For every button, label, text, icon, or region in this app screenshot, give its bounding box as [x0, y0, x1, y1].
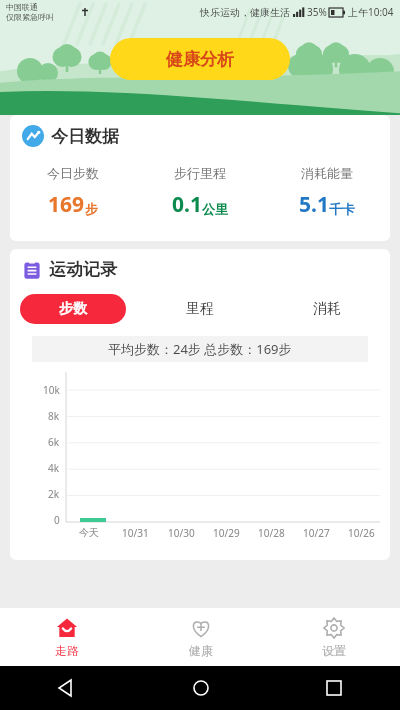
button[interactable]: 步行里程	[136, 165, 263, 219]
staticText: 运动记录	[49, 259, 117, 280]
staticText: 今日数据	[51, 126, 119, 147]
staticText: 169	[48, 190, 85, 219]
staticText: 消耗能量	[301, 165, 353, 181]
staticText: 10/31	[122, 526, 149, 540]
staticText: 今天	[79, 526, 99, 539]
staticText: 走路	[55, 643, 79, 658]
staticText: 仅限紧急呼叫	[6, 12, 54, 22]
staticText: 今日步数	[47, 165, 99, 181]
button[interactable]: 健康分析	[110, 38, 290, 80]
staticText: 消耗	[313, 300, 341, 318]
button[interactable]: 健康	[134, 608, 267, 666]
button[interactable]: 步数	[20, 294, 126, 324]
staticText: 5.1	[299, 190, 329, 219]
staticText: 步数	[59, 300, 87, 318]
staticText: 10/29	[213, 526, 240, 540]
staticText: 中国联通	[6, 2, 38, 12]
button[interactable]: 今日步数	[10, 165, 136, 219]
staticText: 健康分析	[166, 49, 234, 70]
staticText: 上午10:04	[348, 5, 394, 19]
staticText: 10/26	[348, 526, 375, 540]
staticText: 10k	[43, 383, 60, 397]
staticText: 0	[54, 513, 60, 527]
staticText: 设置	[322, 643, 346, 658]
staticText: 平均步数：24步 总步数：169步	[108, 340, 292, 358]
staticText: 快乐运动，健康生活	[200, 6, 290, 19]
button[interactable]: 走路	[0, 608, 134, 666]
staticText: 10/28	[258, 526, 285, 540]
staticText: 千卡	[329, 201, 355, 217]
button[interactable]: 里程	[136, 294, 263, 324]
staticText: 步	[85, 201, 98, 217]
staticText: 35%	[307, 5, 327, 19]
staticText: 4k	[48, 461, 60, 475]
button[interactable]: 设置	[267, 608, 400, 666]
staticText: 健康	[189, 643, 213, 658]
button[interactable]: 消耗	[263, 294, 390, 324]
staticText: 6k	[48, 435, 60, 449]
button[interactable]: 消耗能量	[263, 165, 390, 219]
staticText: 2k	[48, 487, 60, 501]
staticText: 10/30	[168, 526, 195, 540]
staticText: 步行里程	[174, 165, 226, 181]
staticText: 0.1	[172, 190, 202, 219]
staticText: 里程	[186, 300, 214, 318]
staticText: 10/27	[303, 526, 330, 540]
staticText: 8k	[48, 409, 60, 423]
staticText: 公里	[202, 201, 228, 217]
